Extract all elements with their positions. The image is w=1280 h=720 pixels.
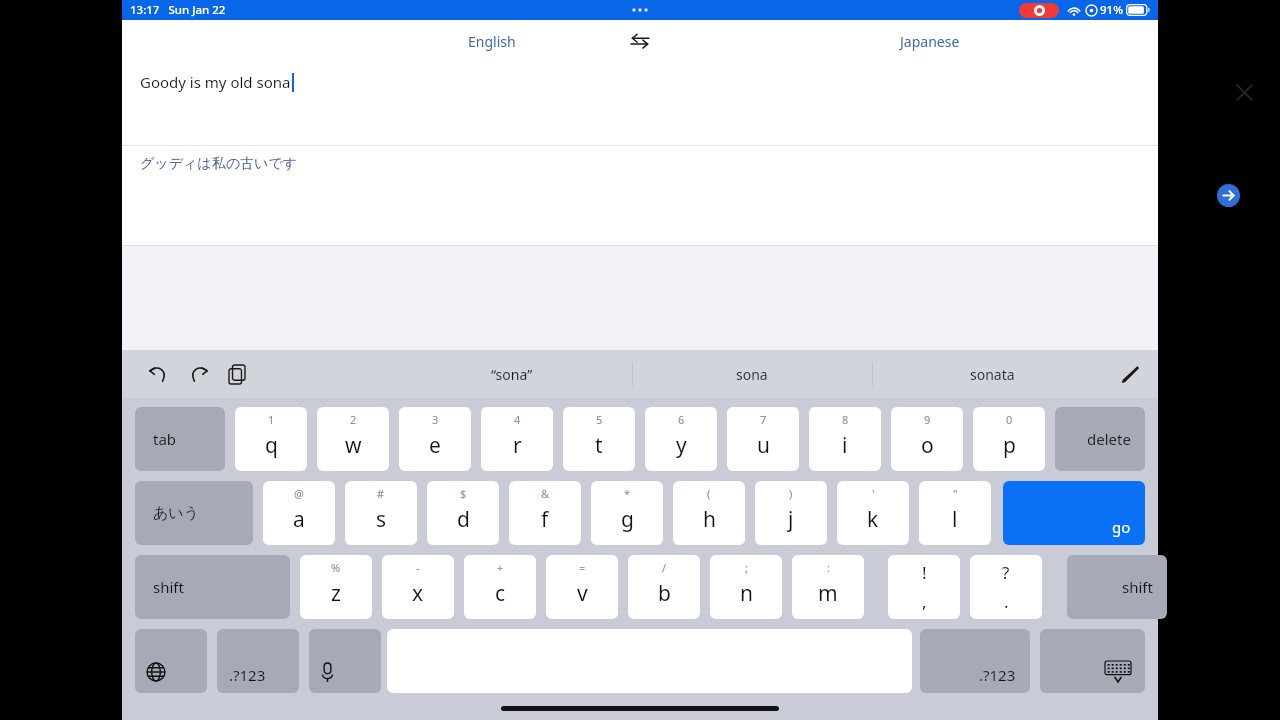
button[interactable]: 6	[645, 407, 717, 471]
staticText: a	[293, 505, 305, 534]
button[interactable]: Change keyboard language	[135, 629, 207, 693]
staticText: shift	[1122, 577, 1153, 597]
button[interactable]: /	[628, 555, 700, 619]
staticText: 0	[1006, 412, 1013, 427]
button[interactable]: English	[332, 20, 652, 62]
staticText: English	[468, 32, 516, 51]
button[interactable]: .?123	[920, 629, 1030, 693]
staticText: &	[541, 486, 550, 501]
staticText: Goody is my old sona	[140, 72, 291, 92]
button[interactable]: ;	[710, 555, 782, 619]
button[interactable]: 5	[563, 407, 635, 471]
button[interactable]: 8	[809, 407, 881, 471]
button[interactable]: “sona”	[392, 350, 632, 398]
staticText: m	[818, 579, 838, 608]
staticText: @	[294, 486, 304, 501]
button[interactable]: $	[427, 481, 499, 545]
button[interactable]: shift	[135, 555, 290, 619]
button[interactable]: Undo	[138, 350, 178, 398]
staticText: 2	[350, 412, 357, 427]
staticText: 9	[924, 412, 931, 427]
button[interactable]: Dictate	[309, 629, 381, 693]
staticText: =	[579, 560, 586, 575]
staticText: f	[541, 505, 549, 534]
button[interactable]: 1	[235, 407, 307, 471]
staticText: )	[789, 486, 793, 501]
staticText: n	[740, 579, 753, 608]
staticText: グッディは私の古いです	[140, 155, 297, 173]
button[interactable]: go	[1003, 481, 1145, 545]
button[interactable]: 7	[727, 407, 799, 471]
button[interactable]: Clear text	[1222, 70, 1266, 114]
button[interactable]: tab	[135, 407, 225, 471]
button[interactable]: Submit translation	[1206, 173, 1250, 217]
staticText: p	[1003, 431, 1016, 460]
button[interactable]: @	[263, 481, 335, 545]
staticText: sonata	[970, 365, 1015, 384]
button[interactable]: Redo	[178, 350, 218, 398]
button[interactable]: 2	[317, 407, 389, 471]
staticText: +	[497, 560, 504, 575]
staticText: b	[658, 579, 671, 608]
button[interactable]: -	[382, 555, 454, 619]
button[interactable]: '	[837, 481, 909, 545]
button[interactable]: shift	[1067, 555, 1167, 619]
button[interactable]: 4	[481, 407, 553, 471]
staticText: x	[412, 579, 424, 608]
button[interactable]: Handwriting	[1108, 350, 1152, 398]
staticText: #	[377, 486, 385, 501]
staticText: 4	[514, 412, 521, 427]
button[interactable]: 9	[891, 407, 963, 471]
button[interactable]: あいう	[135, 481, 253, 545]
staticText: %	[331, 560, 341, 575]
button[interactable]: 0	[973, 407, 1045, 471]
staticText: shift	[153, 577, 184, 597]
button[interactable]: #	[345, 481, 417, 545]
button[interactable]: .?123	[217, 629, 299, 693]
button[interactable]: (	[673, 481, 745, 545]
button[interactable]: sonata	[872, 350, 1112, 398]
staticText: j	[788, 505, 794, 534]
staticText: l	[952, 505, 958, 534]
button[interactable]: Hide keyboard	[1040, 629, 1145, 693]
staticText: i	[842, 431, 848, 460]
staticText: tab	[153, 429, 177, 449]
staticText: 8	[842, 412, 849, 427]
button[interactable]: *	[591, 481, 663, 545]
staticText: ?	[1002, 561, 1010, 584]
button[interactable]: 3	[399, 407, 471, 471]
button[interactable]: !	[888, 555, 960, 619]
button[interactable]: &	[509, 481, 581, 545]
button[interactable]: :	[792, 555, 864, 619]
staticText: e	[429, 431, 441, 460]
button[interactable]: "	[919, 481, 991, 545]
button[interactable]: %	[300, 555, 372, 619]
staticText: z	[331, 579, 341, 608]
staticText: .	[1004, 590, 1009, 613]
staticText: v	[577, 579, 588, 608]
staticText: r	[513, 431, 522, 460]
staticText: (	[707, 486, 711, 501]
button[interactable]: =	[546, 555, 618, 619]
staticText: /	[662, 560, 667, 575]
staticText: "	[953, 486, 958, 501]
button[interactable]: Japanese	[770, 20, 1090, 62]
button[interactable]: sona	[632, 350, 872, 398]
staticText: delete	[1087, 429, 1131, 449]
staticText: .?123	[979, 665, 1016, 685]
button[interactable]: )	[755, 481, 827, 545]
staticText: s	[376, 505, 387, 534]
staticText: Japanese	[900, 32, 960, 51]
button[interactable]: Paste	[217, 350, 257, 398]
button[interactable]: ?	[970, 555, 1042, 619]
button[interactable]: +	[464, 555, 536, 619]
staticText: y	[676, 431, 687, 460]
button[interactable]: delete	[1055, 407, 1145, 471]
staticText: -	[416, 560, 420, 575]
staticText: o	[921, 431, 934, 460]
button[interactable]: Swap languages	[612, 20, 668, 62]
staticText: 1	[268, 412, 275, 427]
staticText: t	[595, 431, 603, 460]
staticText: ,	[922, 590, 927, 613]
